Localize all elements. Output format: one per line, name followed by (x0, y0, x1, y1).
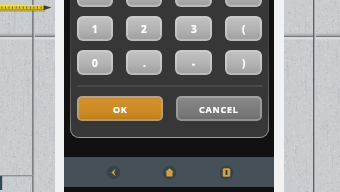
staticText: - (192, 56, 196, 70)
button[interactable]: 0 (77, 50, 113, 75)
button[interactable]: ( (225, 16, 262, 41)
button[interactable]: 1 (77, 16, 113, 41)
button[interactable]: - (175, 50, 212, 75)
staticText: 2 (141, 22, 147, 36)
button[interactable]: OK (77, 96, 163, 121)
staticText: . (143, 56, 146, 70)
staticText: 1 (92, 22, 98, 36)
staticText: OK (113, 103, 128, 115)
staticText: 3 (191, 22, 197, 36)
staticText: ( (242, 22, 246, 36)
button[interactable]: Recent apps (213, 159, 239, 185)
staticText: ) (242, 56, 246, 70)
button[interactable]: Home (156, 159, 182, 185)
button[interactable]: . (126, 50, 162, 75)
button[interactable]: ) (225, 50, 262, 75)
staticText: CANCEL (199, 103, 239, 115)
button[interactable]: Back (100, 159, 126, 185)
button[interactable]: 6 (175, 0, 212, 7)
button[interactable]: 5 (126, 0, 162, 7)
button[interactable]: 4 (77, 0, 113, 7)
button[interactable]: * (225, 0, 262, 7)
button[interactable]: 3 (175, 16, 212, 41)
staticText: 0 (92, 56, 98, 70)
button[interactable]: 2 (126, 16, 162, 41)
button[interactable]: CANCEL (176, 96, 262, 121)
